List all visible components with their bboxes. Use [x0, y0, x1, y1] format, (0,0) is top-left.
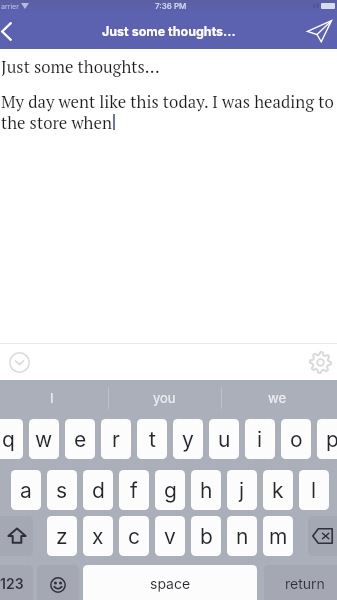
button[interactable]: h [191, 470, 221, 510]
button[interactable]: o [281, 419, 311, 459]
button[interactable]: w [29, 419, 59, 459]
button[interactable]: m [263, 516, 293, 556]
button[interactable]: we [221, 380, 333, 416]
staticText: t [149, 427, 156, 452]
button[interactable]: s [47, 470, 77, 510]
button[interactable]: v [155, 516, 185, 556]
staticText: c [128, 524, 140, 549]
button[interactable]: d [83, 470, 113, 510]
staticText: d [92, 478, 105, 503]
button[interactable]: e [65, 419, 95, 459]
staticText: u [218, 427, 231, 452]
staticText: 123 [0, 575, 24, 592]
button[interactable]: n [227, 516, 257, 556]
button[interactable]: Hide keyboard [5, 348, 34, 377]
button[interactable]: you [108, 380, 220, 416]
staticText: r [112, 427, 120, 452]
staticText: i [257, 427, 263, 452]
staticText: f [130, 478, 138, 503]
button[interactable]: t [137, 419, 167, 459]
staticText: p [326, 427, 337, 452]
button[interactable]: u [209, 419, 239, 459]
staticText: z [56, 524, 68, 549]
button[interactable]: Emoji [37, 565, 79, 600]
staticText: n [236, 524, 249, 549]
button[interactable]: f [119, 470, 149, 510]
button[interactable]: space [83, 565, 257, 600]
staticText: h [200, 478, 213, 503]
staticText: q [2, 427, 15, 452]
button[interactable]: Shift [0, 516, 33, 556]
staticText: Just some thoughts... [102, 24, 236, 39]
staticText: e [74, 427, 87, 452]
staticText: return [285, 575, 325, 592]
button[interactable]: Settings [305, 347, 335, 377]
staticText: you [153, 390, 176, 406]
staticText: g [164, 478, 177, 503]
button[interactable]: c [119, 516, 149, 556]
staticText: 7:36 PM [155, 1, 187, 11]
button[interactable]: r [101, 419, 131, 459]
button[interactable]: q [0, 419, 23, 459]
button[interactable]: 123 [0, 565, 33, 600]
button[interactable]: i [245, 419, 275, 459]
button[interactable]: Back [0, 16, 21, 46]
staticText: I [50, 390, 54, 406]
staticText: y [182, 427, 194, 452]
button[interactable]: y [173, 419, 203, 459]
button[interactable]: k [263, 470, 293, 510]
staticText: s [56, 478, 68, 503]
staticText: j [239, 478, 245, 503]
staticText: arrier [1, 2, 19, 10]
staticText: m [269, 524, 288, 549]
button[interactable]: p [317, 419, 337, 459]
button[interactable]: l [299, 470, 329, 510]
staticText: k [272, 478, 284, 503]
staticText: b [200, 524, 213, 549]
staticText: l [311, 478, 317, 503]
staticText: v [164, 524, 176, 549]
staticText: we [268, 390, 286, 406]
button[interactable]: Send [305, 17, 333, 45]
button[interactable]: Backspace [308, 516, 337, 556]
button[interactable]: a [11, 470, 41, 510]
staticText: My day went like this today. I was headi… [1, 91, 334, 133]
button[interactable]: I [0, 380, 108, 416]
staticText: a [20, 478, 32, 503]
button[interactable]: x [83, 516, 113, 556]
button[interactable]: b [191, 516, 221, 556]
button[interactable]: j [227, 470, 257, 510]
button[interactable]: g [155, 470, 185, 510]
staticText: o [290, 427, 303, 452]
staticText: w [35, 427, 53, 452]
button[interactable]: z [47, 516, 77, 556]
staticText: space [150, 575, 191, 592]
staticText: Just some thoughts... [1, 56, 160, 78]
button[interactable]: return [264, 565, 337, 600]
staticText: x [92, 524, 104, 549]
